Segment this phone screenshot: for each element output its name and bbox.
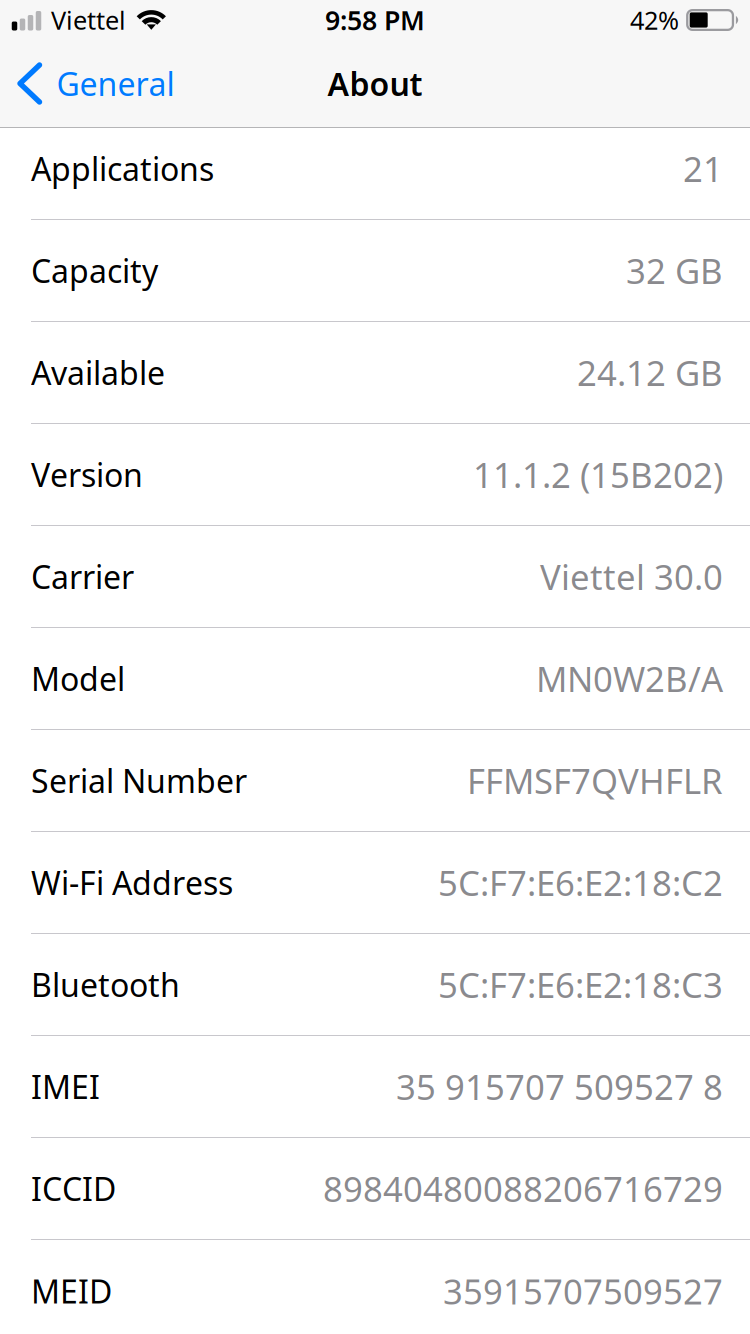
- staticText: MN0W2B/A: [536, 655, 723, 701]
- button[interactable]: Version: [0, 424, 750, 526]
- staticText: 24.12 GB: [577, 349, 723, 395]
- staticText: Bluetooth: [31, 963, 180, 1006]
- staticText: Model: [31, 657, 125, 700]
- staticText: Viettel: [51, 3, 126, 37]
- staticText: ICCID: [31, 1167, 116, 1210]
- button[interactable]: Model: [0, 628, 750, 730]
- staticText: 5C:F7:E6:E2:18:C3: [438, 961, 723, 1007]
- staticText: 5C:F7:E6:E2:18:C2: [438, 859, 723, 905]
- staticText: Capacity: [31, 249, 158, 292]
- button[interactable]: Bluetooth: [0, 934, 750, 1036]
- staticText: 11.1.2 (15B202): [473, 451, 723, 497]
- button[interactable]: MEID: [0, 1240, 750, 1334]
- button[interactable]: Carrier: [0, 526, 750, 628]
- staticText: 89840480088206716729: [323, 1165, 723, 1211]
- staticText: About: [327, 62, 422, 105]
- staticText: 42%: [630, 3, 679, 37]
- staticText: FFMSF7QVHFLR: [467, 757, 723, 803]
- staticText: MEID: [31, 1270, 112, 1312]
- staticText: Available: [31, 351, 165, 394]
- staticText: General: [56, 62, 174, 105]
- button[interactable]: ICCID: [0, 1138, 750, 1240]
- staticText: Carrier: [31, 555, 134, 598]
- staticText: 9:58 PM: [325, 2, 425, 38]
- button[interactable]: Available: [0, 322, 750, 424]
- button[interactable]: Applications: [0, 128, 750, 220]
- staticText: IMEI: [31, 1065, 100, 1108]
- staticText: 35 915707 509527 8: [396, 1063, 723, 1109]
- button[interactable]: Serial Number: [0, 730, 750, 832]
- button[interactable]: General: [0, 40, 190, 127]
- staticText: 35915707509527: [443, 1268, 723, 1314]
- staticText: Applications: [31, 147, 214, 190]
- staticText: 21: [683, 145, 723, 191]
- staticText: Wi-Fi Address: [31, 861, 233, 904]
- staticText: Serial Number: [31, 759, 247, 802]
- button[interactable]: IMEI: [0, 1036, 750, 1138]
- staticText: 32 GB: [626, 247, 723, 293]
- staticText: Version: [31, 453, 143, 496]
- staticText: Viettel 30.0: [540, 553, 723, 599]
- button[interactable]: Capacity: [0, 220, 750, 322]
- button[interactable]: Wi-Fi Address: [0, 832, 750, 934]
